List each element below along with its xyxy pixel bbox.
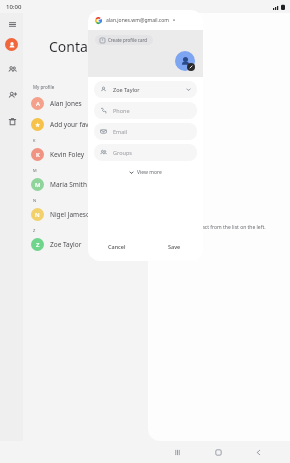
button[interactable]: Cancel <box>88 234 145 258</box>
staticText: N <box>35 211 40 219</box>
button[interactable]: Create profile card <box>95 35 153 45</box>
button[interactable]: A <box>23 93 148 114</box>
button[interactable]: View more <box>88 166 203 178</box>
staticText: Maria Smith <box>50 180 87 189</box>
staticText: Z <box>36 241 40 249</box>
staticText: My profile <box>33 84 55 90</box>
button[interactable]: Recents <box>169 444 185 460</box>
staticText: View more <box>137 169 162 176</box>
staticText: K <box>33 138 36 143</box>
button[interactable]: N <box>23 204 148 225</box>
staticText: M <box>33 168 37 173</box>
staticText: K <box>36 151 40 159</box>
button[interactable]: M <box>23 174 148 195</box>
button[interactable]: Phone <box>94 102 197 119</box>
staticText: A <box>36 100 40 108</box>
staticText: Cancel <box>108 243 126 250</box>
staticText: Kevin Foley <box>50 150 85 159</box>
staticText: Groups <box>113 149 191 156</box>
staticText: M <box>35 181 41 189</box>
staticText: ★ <box>35 121 41 128</box>
button[interactable]: Delete <box>4 113 20 129</box>
button[interactable]: Email <box>94 123 197 140</box>
staticText: alan.jones.wm@gmail.com <box>106 17 169 24</box>
staticText: Z <box>33 228 36 233</box>
staticText: Zoe Taylor <box>50 240 82 249</box>
button[interactable]: Groups <box>94 144 197 161</box>
button[interactable]: Save <box>145 234 203 258</box>
staticText: 10:00 <box>6 3 22 11</box>
staticText: Alan Jones <box>50 99 82 108</box>
button[interactable]: Groups <box>4 61 20 77</box>
staticText: Create profile card <box>108 37 148 43</box>
staticText: Select a contact from the list on the le… <box>172 224 266 231</box>
staticText: N <box>33 198 37 203</box>
button[interactable]: Back <box>250 444 266 460</box>
button[interactable]: Menu <box>4 16 20 32</box>
button[interactable]: Zoe Taylor <box>94 81 197 98</box>
button[interactable]: ★ <box>23 114 148 135</box>
staticText: Zoe Taylor <box>113 86 186 93</box>
staticText: Add your favourites <box>50 120 111 129</box>
staticText: Nigel Jameson <box>50 210 94 219</box>
staticText: Email <box>113 128 191 135</box>
staticText: Phone <box>113 107 191 114</box>
button[interactable]: K <box>23 144 148 165</box>
button[interactable]: Add contact <box>4 87 20 103</box>
staticText: Contacts <box>49 37 107 56</box>
button[interactable]: alan.jones.wm@gmail.com <box>88 10 203 30</box>
button[interactable]: Z <box>23 234 148 255</box>
button[interactable]: Home <box>210 444 226 460</box>
button[interactable]: Change photo <box>175 51 195 71</box>
staticText: Save <box>168 243 181 250</box>
button[interactable]: Contacts <box>5 38 18 51</box>
